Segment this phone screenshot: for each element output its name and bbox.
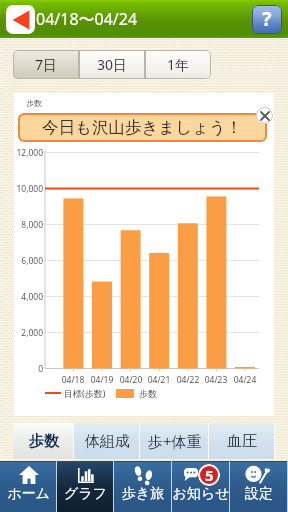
button[interactable]: Help: [252, 5, 282, 34]
button[interactable]: 今日も沢山歩きましょう！: [18, 113, 267, 142]
button[interactable]: 歩+体重: [140, 423, 209, 459]
staticText: 今日も沢山歩きましょう！: [42, 117, 243, 138]
staticText: 5: [205, 465, 214, 485]
button[interactable]: グラフ: [57, 461, 114, 512]
staticText: 04/21: [145, 374, 173, 386]
staticText: ?: [262, 5, 272, 32]
staticText: 歩き旅: [114, 485, 172, 503]
staticText: 04/22: [174, 374, 202, 386]
button[interactable]: 5: [172, 461, 230, 512]
button[interactable]: 血圧: [209, 423, 275, 459]
staticText: 8,000: [14, 219, 43, 231]
button[interactable]: 歩数: [13, 423, 74, 459]
staticText: 2,000: [14, 327, 43, 339]
button[interactable]: 1年: [145, 50, 211, 79]
staticText: 歩数: [26, 98, 42, 108]
staticText: 4,000: [14, 291, 43, 303]
button[interactable]: 30日: [79, 50, 145, 79]
staticText: 歩数: [29, 432, 59, 451]
staticText: ホーム: [0, 485, 57, 503]
staticText: 血圧: [227, 432, 257, 451]
staticText: 1年: [167, 55, 190, 74]
button[interactable]: 設定: [230, 461, 288, 512]
staticText: 04/18〜04/24: [36, 8, 138, 30]
button[interactable]: ホーム: [0, 461, 57, 512]
staticText: お知らせ: [172, 485, 230, 503]
staticText: 0: [14, 363, 43, 375]
button[interactable]: 歩き旅: [114, 461, 172, 512]
staticText: 10,000: [14, 183, 43, 195]
staticText: 体組成: [85, 432, 130, 451]
button[interactable]: Back: [6, 5, 35, 34]
button[interactable]: 体組成: [74, 423, 140, 459]
staticText: 04/20: [117, 374, 145, 386]
staticText: 04/24: [231, 374, 259, 386]
button[interactable]: Close: [256, 107, 273, 124]
staticText: グラフ: [57, 485, 114, 503]
staticText: 04/19: [88, 374, 116, 386]
staticText: 歩数: [139, 388, 157, 399]
staticText: 歩+体重: [148, 431, 202, 451]
staticText: 6,000: [14, 255, 43, 267]
staticText: 目標(歩数): [64, 387, 106, 399]
staticText: 7日: [35, 55, 58, 74]
staticText: 04/18: [59, 374, 87, 386]
staticText: 04/23: [202, 374, 230, 386]
staticText: 30日: [97, 55, 128, 74]
staticText: 12,000: [14, 147, 43, 159]
staticText: 設定: [230, 485, 288, 503]
button[interactable]: 7日: [13, 50, 79, 79]
